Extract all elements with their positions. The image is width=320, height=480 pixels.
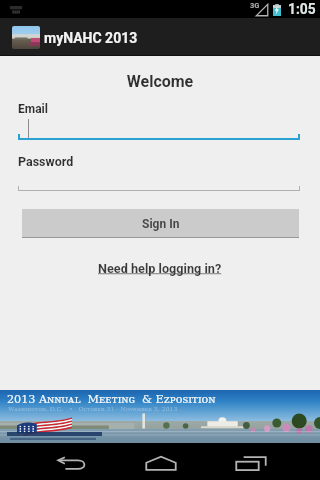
staticText: 2013 Aɴɴᴜᴀʟ Mᴇᴇᴛɪɴɢ & Eᴢᴩᴏsɪᴛɪᴏɴ	[7, 393, 216, 406]
button[interactable]	[0, 112, 320, 142]
staticText: Sign In	[142, 217, 180, 231]
staticText: 3G	[250, 1, 260, 10]
staticText: Email	[18, 102, 48, 116]
button[interactable]: Need help logging in?	[94, 259, 226, 278]
staticText: Welcome	[0, 72, 320, 91]
staticText: Password	[18, 154, 74, 169]
staticText: 1:05	[288, 1, 316, 17]
button[interactable]: Back	[35, 443, 107, 480]
staticText: myNAHC 2013	[44, 30, 138, 46]
button[interactable]	[0, 164, 320, 192]
button[interactable]: Home	[124, 443, 196, 480]
button[interactable]: Recent apps	[214, 443, 286, 480]
staticText: Wᴀsʜɪɴɢᴛᴏɴ, D.C. • Oᴄᴛᴏʙᴇʀ 31 - Nᴏᴠᴇᴍʙᴇʀ…	[8, 405, 178, 412]
button[interactable]: Sign In	[22, 209, 299, 238]
